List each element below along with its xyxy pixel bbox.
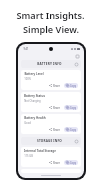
button[interactable]: Battery Health	[21, 114, 81, 134]
button[interactable]: Copy	[64, 127, 78, 132]
button[interactable]: Share	[47, 160, 62, 165]
staticText: 115 GB	[24, 154, 33, 158]
staticText: Battery Level	[24, 72, 44, 76]
staticText: 9:41	[23, 47, 29, 51]
staticText: BATTERY INFO	[24, 62, 75, 66]
staticText: Not Charging	[24, 99, 41, 103]
button[interactable]: Copy	[64, 105, 78, 110]
button[interactable]: Battery Level	[21, 70, 81, 90]
staticText: Battery Health	[24, 116, 46, 120]
staticText: Copy	[70, 128, 76, 131]
button[interactable]: Internal Total Storage	[21, 147, 81, 167]
button[interactable]: Share	[47, 105, 62, 110]
staticText: Good	[24, 121, 31, 125]
staticText: Share	[53, 106, 60, 109]
staticText: Battery Status	[24, 94, 45, 98]
button[interactable]: BATTERY INFO	[21, 60, 81, 68]
button[interactable]: More options	[75, 54, 80, 59]
staticText: Share	[53, 161, 60, 164]
button[interactable]: Copy	[64, 160, 78, 165]
staticText: Copy	[70, 84, 76, 87]
staticText: Share	[53, 84, 60, 87]
staticText: Copy	[70, 106, 76, 109]
staticText: Internal Total Storage	[24, 149, 56, 153]
staticText: Simple View.	[23, 23, 79, 36]
staticText: Copy	[70, 161, 76, 164]
staticText: STORAGE INFO	[24, 139, 75, 143]
staticText: Smart Insights.	[16, 9, 85, 22]
button[interactable]: STORAGE INFO	[21, 137, 81, 145]
button[interactable]: Copy	[64, 83, 78, 88]
staticText: 100%	[24, 77, 31, 81]
button[interactable]: Battery Status	[21, 92, 81, 112]
button[interactable]: Share	[47, 83, 62, 88]
staticText: Share	[53, 128, 60, 131]
button[interactable]: Share	[47, 127, 62, 132]
